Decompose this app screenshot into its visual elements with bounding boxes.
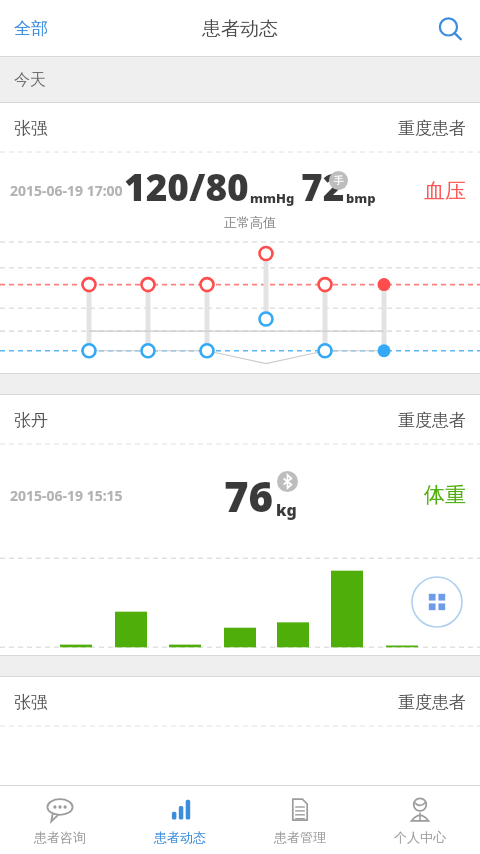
staticText: 张强 bbox=[14, 692, 48, 713]
staticText: 个人中心 bbox=[394, 829, 446, 845]
staticText: 张强 bbox=[14, 118, 48, 139]
staticText: 2015-06-19 15:15 bbox=[10, 486, 123, 505]
staticText: 患者咨询 bbox=[34, 829, 86, 845]
button[interactable]: Search bbox=[428, 7, 472, 51]
button[interactable]: 全部 bbox=[4, 10, 58, 47]
staticText: 今天 bbox=[14, 70, 46, 90]
button[interactable]: 患者动态 bbox=[120, 786, 240, 854]
staticText: 重度患者 bbox=[398, 410, 466, 431]
button[interactable]: 张丹 bbox=[0, 395, 480, 655]
staticText: kg bbox=[276, 499, 297, 521]
button[interactable]: 张丹 bbox=[0, 395, 480, 445]
staticText: 2015-06-19 17:00 bbox=[10, 181, 123, 200]
button[interactable]: 个人中心 bbox=[360, 786, 480, 854]
staticText: 全部 bbox=[14, 18, 48, 39]
staticText: 患者动态 bbox=[202, 17, 278, 41]
staticText: 血压 bbox=[424, 178, 466, 204]
staticText: 张丹 bbox=[14, 410, 48, 431]
staticText: 120/80 bbox=[124, 161, 249, 211]
staticText: 重度患者 bbox=[398, 692, 466, 713]
button[interactable]: More bbox=[411, 576, 463, 628]
staticText: 正常高值 bbox=[224, 214, 276, 230]
staticText: 患者管理 bbox=[274, 829, 326, 845]
staticText: 重度患者 bbox=[398, 118, 466, 139]
staticText: 手 bbox=[334, 174, 344, 187]
button[interactable]: 患者咨询 bbox=[0, 786, 120, 854]
staticText: 患者动态 bbox=[154, 829, 206, 845]
button[interactable]: 张强 bbox=[0, 103, 480, 153]
staticText: bmp bbox=[346, 189, 376, 207]
button[interactable]: 患者管理 bbox=[240, 786, 360, 854]
button[interactable]: 张强 bbox=[0, 103, 480, 373]
staticText: 76 bbox=[224, 467, 274, 524]
staticText: 体重 bbox=[424, 482, 466, 508]
staticText: mmHg bbox=[250, 189, 295, 207]
button[interactable]: 张强 bbox=[0, 677, 480, 727]
button[interactable]: 张强 bbox=[0, 677, 480, 727]
staticText: 72 bbox=[301, 161, 345, 211]
